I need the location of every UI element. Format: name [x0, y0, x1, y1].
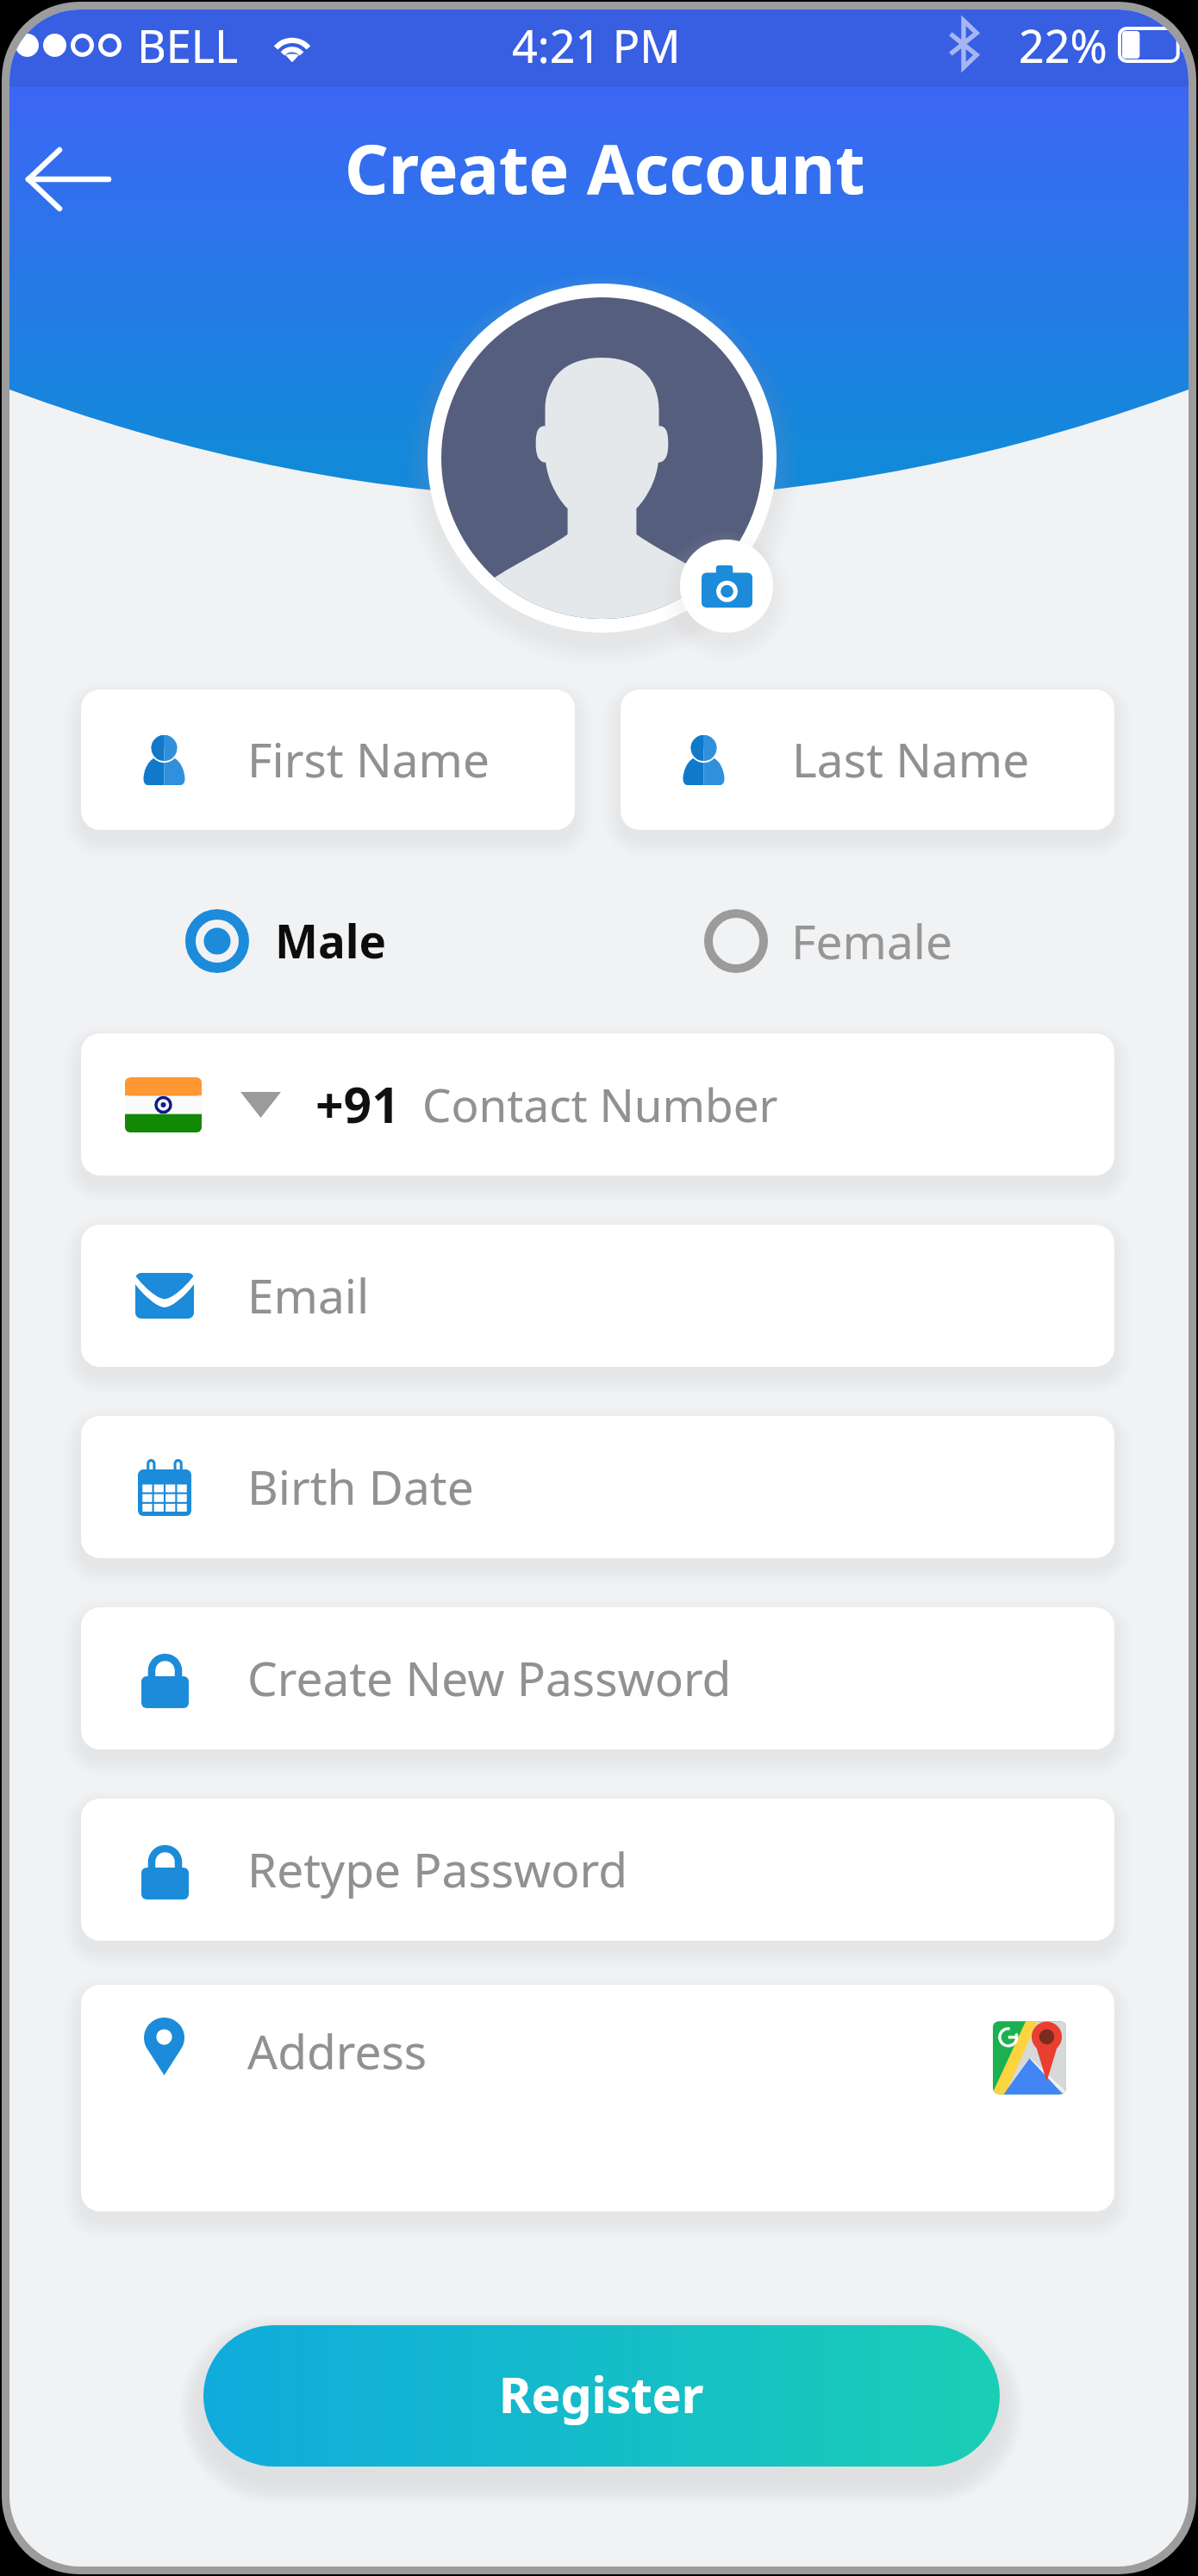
button[interactable]: Create New Password	[81, 1607, 1114, 1750]
button[interactable]: +91	[81, 1033, 1114, 1176]
staticText: +91	[315, 1070, 400, 1138]
staticText: Address	[247, 2018, 427, 2083]
staticText: Register	[499, 2361, 704, 2428]
button[interactable]: Pick location on map	[993, 2010, 1075, 2100]
button[interactable]: Profile photo	[441, 297, 763, 619]
button[interactable]: Register	[203, 2325, 1000, 2467]
staticText: Contact Number	[422, 1073, 778, 1135]
staticText: 4:21 PM	[512, 15, 681, 76]
button[interactable]: First Name	[81, 689, 575, 830]
button[interactable]: Change photo	[680, 540, 773, 633]
button[interactable]: Retype Password	[81, 1799, 1114, 1941]
staticText: Birth Date	[247, 1454, 474, 1519]
button[interactable]: Address	[81, 1985, 1114, 2211]
staticText: 22%	[1019, 15, 1108, 76]
staticText: BELL	[137, 15, 239, 76]
button[interactable]: Back	[16, 127, 121, 232]
staticText: First Name	[247, 727, 490, 791]
staticText: Create Account	[345, 122, 865, 215]
staticText: Female	[791, 908, 953, 973]
staticText: Retype Password	[247, 1837, 628, 1901]
button[interactable]: Email	[81, 1225, 1114, 1367]
staticText: Create New Password	[247, 1645, 732, 1710]
staticText: Last Name	[792, 727, 1030, 791]
staticText: Male	[275, 909, 387, 971]
button[interactable]: Last Name	[621, 689, 1114, 830]
staticText: Email	[247, 1263, 370, 1327]
button[interactable]: Birth Date	[81, 1416, 1114, 1558]
button[interactable]: Female	[691, 902, 1036, 980]
button[interactable]: Male	[172, 902, 500, 980]
